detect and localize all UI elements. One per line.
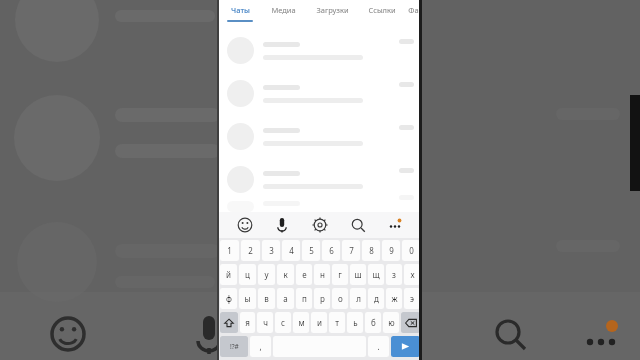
button[interactable]: Чаты	[219, 0, 261, 25]
button[interactable]	[219, 115, 421, 158]
staticText: э	[410, 293, 414, 304]
button[interactable]: .	[368, 336, 389, 357]
button[interactable]: т	[329, 312, 345, 333]
button[interactable]: Voice input	[270, 213, 294, 237]
button[interactable]: 9	[382, 240, 400, 261]
button[interactable]: ф	[220, 288, 237, 309]
button[interactable]: 2	[241, 240, 260, 261]
button[interactable]: а	[277, 288, 294, 309]
button[interactable]: Ссылки	[359, 0, 405, 25]
button[interactable]: з	[386, 264, 402, 285]
button[interactable]: Backspace	[401, 312, 420, 333]
button[interactable]: м	[293, 312, 309, 333]
button[interactable]: Settings	[308, 213, 332, 237]
staticText: о	[338, 293, 343, 304]
button[interactable]: ю	[383, 312, 399, 333]
button[interactable]: в	[258, 288, 275, 309]
button[interactable]: п	[296, 288, 312, 309]
staticText: щ	[372, 269, 380, 280]
staticText: ж	[391, 293, 398, 304]
staticText: ю	[388, 317, 395, 328]
staticText: ,	[259, 341, 262, 352]
button[interactable]	[219, 29, 421, 72]
button[interactable]: Search	[486, 310, 534, 358]
button[interactable]: ь	[347, 312, 363, 333]
button[interactable]: г	[332, 264, 348, 285]
button[interactable]: 0	[402, 240, 420, 261]
staticText: д	[374, 293, 379, 304]
button[interactable]: с	[275, 312, 291, 333]
staticText: с	[281, 317, 285, 328]
button[interactable]: к	[277, 264, 294, 285]
staticText: н	[320, 269, 325, 280]
staticText: .	[377, 341, 380, 352]
button[interactable]: д	[368, 288, 384, 309]
staticText: ч	[263, 317, 268, 328]
button[interactable]: 1	[220, 240, 239, 261]
staticText: л	[356, 293, 361, 304]
button[interactable]: Emoji	[233, 213, 257, 237]
button[interactable]: э	[404, 288, 420, 309]
staticText: 8	[369, 245, 374, 256]
staticText: у	[264, 269, 269, 280]
button[interactable]: 4	[282, 240, 300, 261]
staticText: е	[302, 269, 307, 280]
button[interactable]: Search	[346, 213, 370, 237]
button[interactable]: Фа	[405, 0, 421, 25]
staticText: и	[317, 317, 322, 328]
staticText: 6	[329, 245, 334, 256]
button[interactable]: 6	[322, 240, 340, 261]
button[interactable]: 7	[342, 240, 360, 261]
staticText: 2	[248, 245, 253, 256]
button[interactable]: More	[576, 314, 624, 360]
button[interactable]: More	[383, 213, 407, 237]
staticText: б	[371, 317, 376, 328]
button[interactable]: 8	[362, 240, 380, 261]
button[interactable]: ж	[386, 288, 402, 309]
button[interactable]: ч	[257, 312, 273, 333]
button[interactable]: н	[314, 264, 330, 285]
staticText: 1	[227, 245, 232, 256]
button[interactable]: щ	[368, 264, 384, 285]
staticText: Ссылки	[368, 5, 396, 15]
button[interactable]: л	[350, 288, 366, 309]
button[interactable]: !?#	[220, 336, 248, 357]
button[interactable]: я	[240, 312, 255, 333]
button[interactable]: Загрузки	[305, 0, 359, 25]
button[interactable]: Voice input	[185, 310, 233, 358]
button[interactable]: и	[311, 312, 327, 333]
button[interactable]: Send	[391, 336, 420, 357]
staticText: 4	[289, 245, 294, 256]
staticText: в	[264, 293, 269, 304]
button[interactable]: й	[220, 264, 237, 285]
button[interactable]: 3	[262, 240, 280, 261]
staticText: ш	[354, 269, 362, 280]
button[interactable]	[219, 72, 421, 115]
staticText: а	[283, 293, 288, 304]
button[interactable]: р	[314, 288, 330, 309]
button[interactable]: ы	[239, 288, 256, 309]
button[interactable]	[219, 201, 421, 212]
button[interactable]: ц	[239, 264, 256, 285]
button[interactable]: ,	[250, 336, 271, 357]
button[interactable]: о	[332, 288, 348, 309]
staticText: 3	[269, 245, 274, 256]
button[interactable]	[219, 158, 421, 201]
button[interactable]: е	[296, 264, 312, 285]
staticText: х	[410, 269, 415, 280]
button[interactable]: ш	[350, 264, 366, 285]
button[interactable]: Медиа	[261, 0, 305, 25]
staticText: ь	[353, 317, 358, 328]
staticText: п	[302, 293, 307, 304]
staticText: я	[245, 317, 250, 328]
button[interactable]: Emoji	[44, 310, 92, 358]
button[interactable]: у	[258, 264, 275, 285]
button[interactable]: Shift	[220, 312, 238, 333]
staticText: Медиа	[271, 5, 296, 15]
staticText: м	[298, 317, 305, 328]
button[interactable]: 5	[302, 240, 320, 261]
button[interactable]: б	[365, 312, 381, 333]
staticText: 7	[349, 245, 354, 256]
button[interactable]: х	[404, 264, 420, 285]
